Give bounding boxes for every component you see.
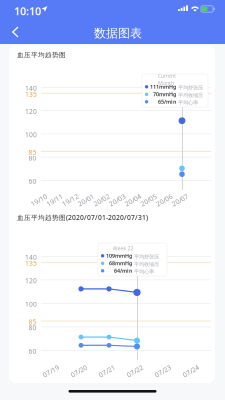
staticText: 07/23 [154, 367, 172, 375]
staticText: 111mmHg [150, 83, 176, 90]
staticText: 20/04 [124, 196, 142, 204]
staticText: Current Month [158, 72, 176, 86]
staticText: 10:10 [14, 4, 41, 18]
staticText: 20/03 [108, 196, 126, 204]
staticText: 07/20 [70, 367, 88, 375]
staticText: 平均心率 [134, 268, 154, 275]
staticText: 数据图表 [94, 26, 142, 41]
staticText: Week 22 [112, 245, 133, 252]
staticText: 120 [25, 276, 37, 285]
staticText: 100 [25, 130, 37, 139]
staticText: 60 [28, 347, 36, 356]
staticText: 20/02 [93, 196, 111, 204]
staticText: 血压平均趋势图 [17, 51, 66, 59]
staticText: 平均舒张压 [178, 84, 203, 91]
staticText: 20/06 [155, 196, 173, 204]
staticText: 19/12 [61, 196, 79, 204]
staticText: 07/22 [126, 367, 144, 375]
staticText: 20/01 [77, 196, 95, 204]
button[interactable]: Back [0, 20, 30, 44]
staticText: 19/10 [30, 196, 48, 204]
staticText: 109mmHg [106, 252, 132, 259]
staticText: 20/05 [140, 196, 158, 204]
staticText: 平均收缩压 [134, 261, 159, 268]
staticText: 19/11 [46, 196, 64, 204]
staticText: 80 [28, 154, 36, 162]
staticText: 135 [25, 259, 37, 268]
staticText: 64/min [114, 267, 132, 274]
staticText: 07/19 [42, 367, 60, 375]
staticText: 70mmHg [153, 91, 176, 98]
staticText: 140 [25, 84, 37, 93]
staticText: 140 [25, 253, 37, 262]
staticText: 07/24 [182, 367, 200, 375]
staticText: 血压平均趋势图(2020/07/01-2020/07/31) [17, 213, 148, 222]
staticText: 100 [25, 300, 37, 309]
staticText: 85 [28, 317, 36, 326]
staticText: 20/07 [171, 196, 189, 204]
staticText: 80 [28, 323, 36, 332]
staticText: 68mmHg [109, 260, 132, 267]
staticText: 120 [25, 107, 37, 116]
staticText: 135 [25, 90, 37, 98]
staticText: 85 [28, 148, 36, 157]
staticText: 60 [28, 177, 36, 186]
staticText: 65/min [158, 98, 176, 105]
staticText: 平均舒张压 [134, 253, 159, 260]
staticText: 平均收缩压 [178, 92, 203, 99]
staticText: 07/21 [98, 367, 116, 375]
staticText: 平均心率 [178, 99, 198, 106]
